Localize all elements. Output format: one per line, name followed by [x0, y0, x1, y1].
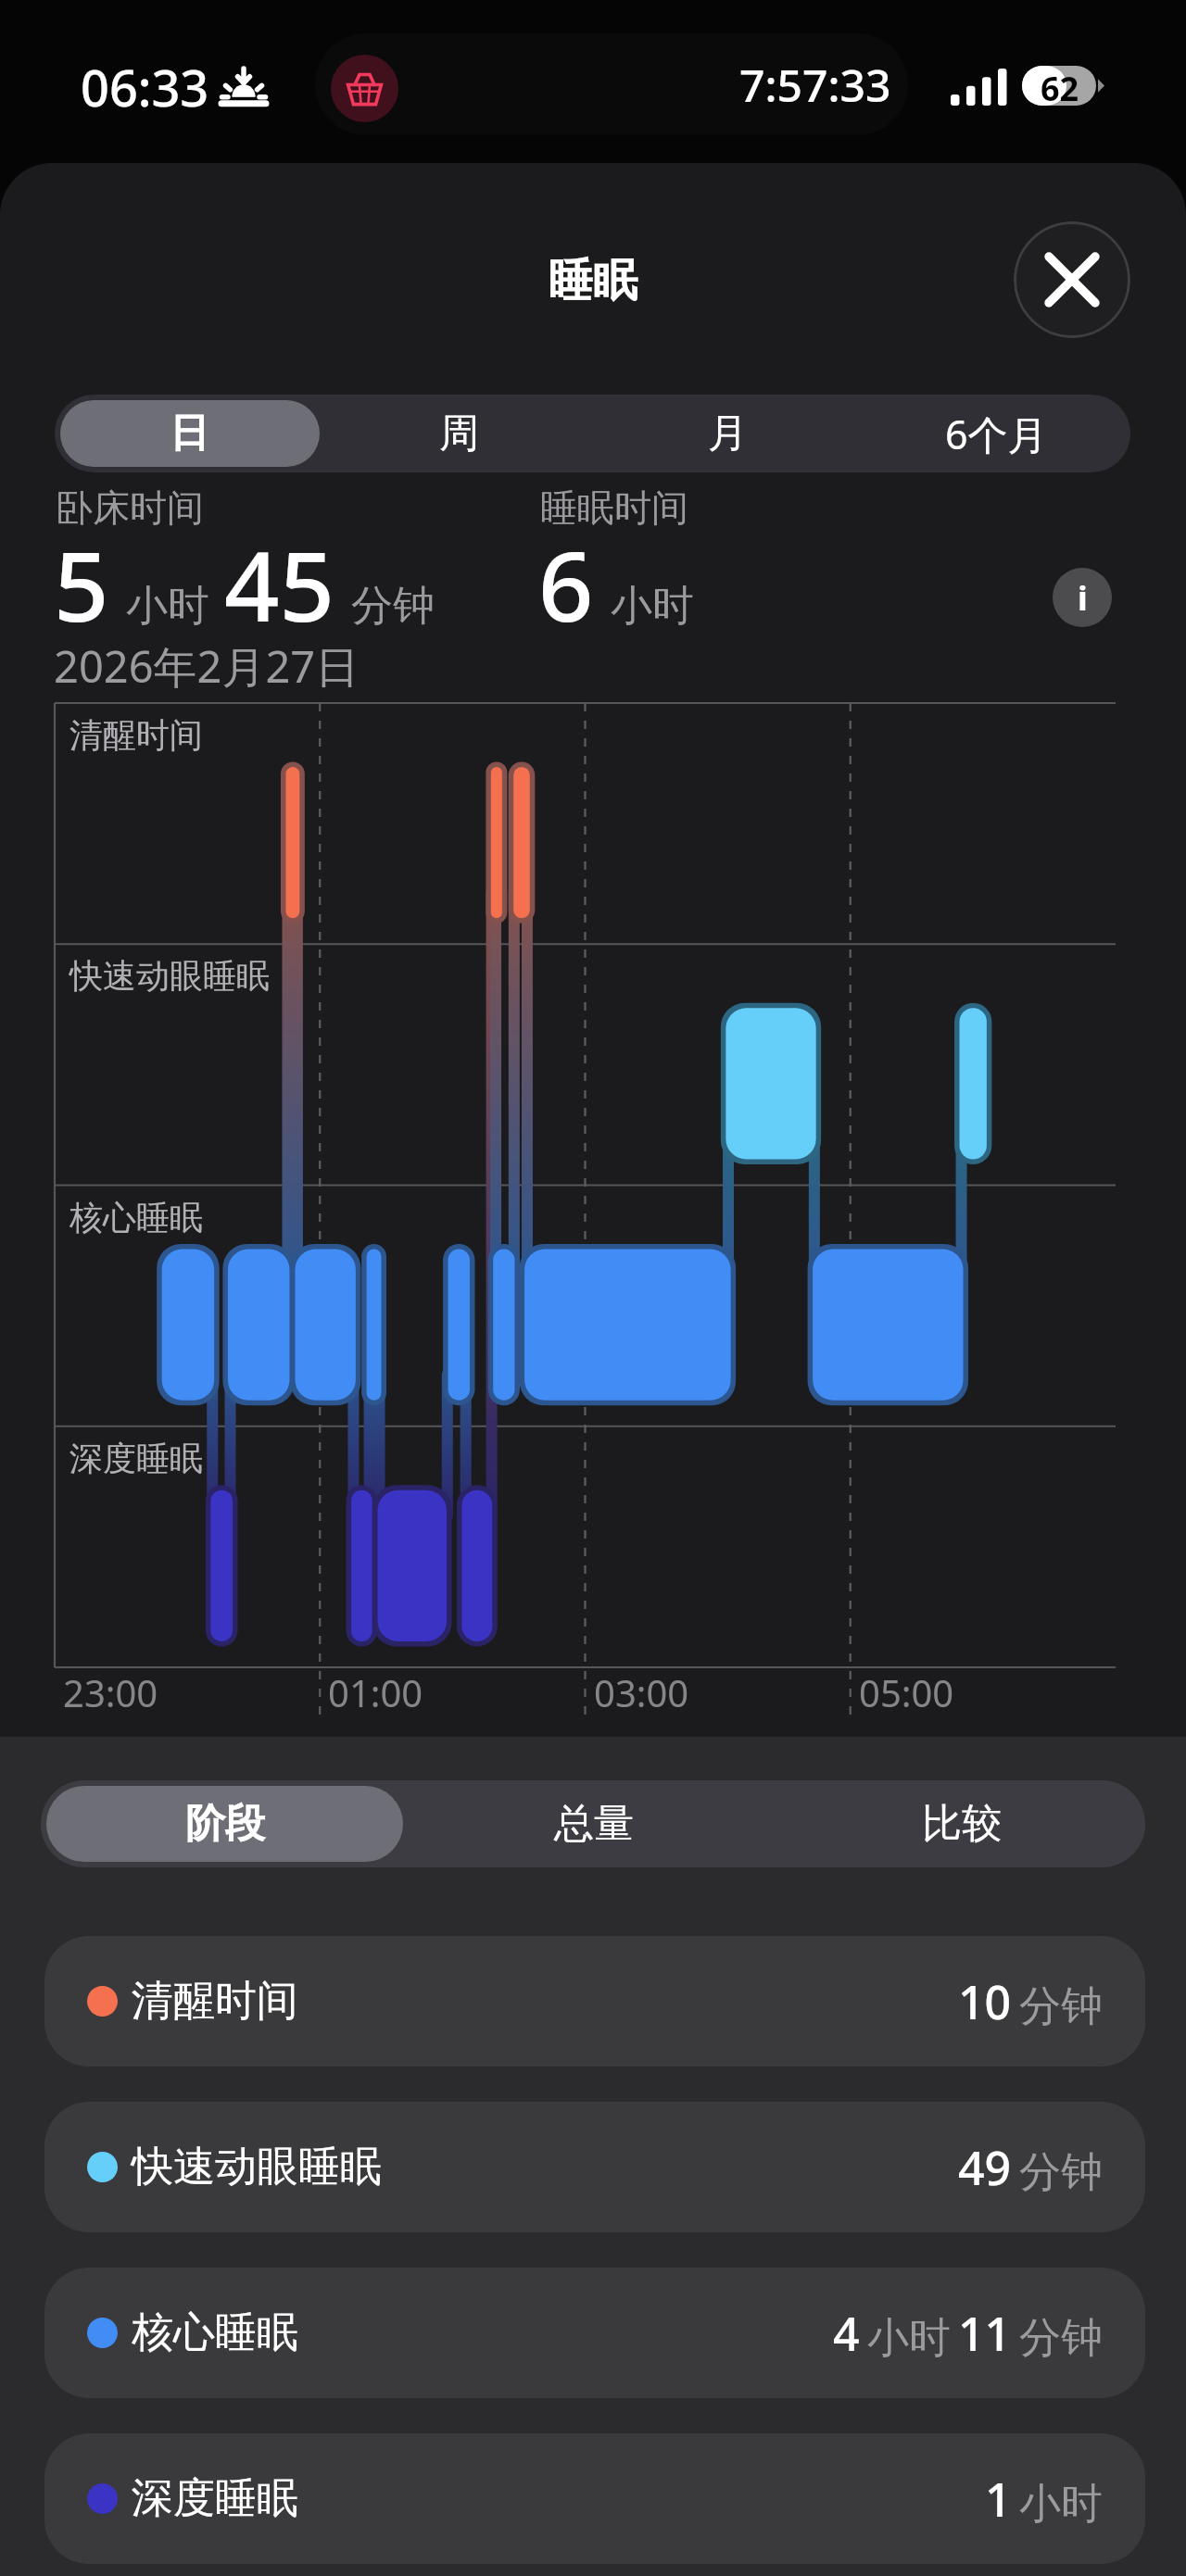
staticText: 11 — [958, 2302, 1012, 2365]
staticText: 分钟 — [1019, 2312, 1103, 2365]
button[interactable]: Close — [1014, 221, 1130, 338]
staticText: 周 — [439, 408, 479, 459]
staticText: 45 — [224, 519, 334, 650]
button[interactable]: 深度睡眠 — [44, 2433, 1145, 2564]
staticText: 深度睡眠 — [132, 2472, 298, 2525]
button[interactable]: 月 — [593, 395, 862, 472]
staticText: 卧床时间 — [56, 484, 204, 531]
staticText: 10 — [958, 1970, 1012, 2033]
staticText: 1 — [985, 2468, 1012, 2531]
staticText: 5 — [54, 519, 109, 650]
staticText: 快速动眼睡眠 — [132, 2141, 382, 2193]
staticText: 7:57:33 — [739, 55, 891, 115]
staticText: 分钟 — [1019, 1980, 1103, 2033]
staticText: 睡眠 — [0, 253, 1186, 308]
staticText: 03:00 — [594, 1667, 689, 1717]
button[interactable]: 阶段 — [41, 1780, 410, 1867]
staticText: 清醒时间 — [69, 714, 203, 756]
button[interactable]: 比较 — [777, 1780, 1145, 1867]
button[interactable]: 快速动眼睡眠 — [44, 2102, 1145, 2232]
button[interactable]: 核心睡眠 — [44, 2268, 1145, 2398]
staticText: i — [1078, 575, 1088, 621]
staticText: 分钟 — [351, 580, 435, 633]
staticText: 06:33 — [81, 53, 209, 121]
staticText: 49 — [958, 2136, 1012, 2199]
staticText: 小时 — [867, 2312, 951, 2365]
staticText: 01:00 — [328, 1667, 423, 1717]
staticText: 4 — [833, 2302, 860, 2365]
staticText: 05:00 — [859, 1667, 954, 1717]
button[interactable]: 日 — [55, 395, 324, 472]
button[interactable]: 清醒时间 — [44, 1936, 1145, 2067]
staticText: 23:00 — [63, 1667, 158, 1717]
staticText: 小时 — [1019, 2478, 1103, 2531]
button[interactable]: Info — [1053, 568, 1112, 627]
staticText: 核心睡眠 — [132, 2306, 298, 2359]
staticText: 6 — [538, 519, 594, 650]
button[interactable]: 总量 — [410, 1780, 777, 1867]
staticText: 分钟 — [1019, 2146, 1103, 2199]
button[interactable]: 周 — [324, 395, 593, 472]
staticText: 深度睡眠 — [69, 1438, 203, 1479]
staticText: 2026年2月27日 — [54, 636, 360, 696]
staticText: 清醒时间 — [132, 1975, 298, 2028]
staticText: 快速动眼睡眠 — [69, 955, 270, 997]
staticText: 总量 — [554, 1799, 634, 1849]
staticText: 比较 — [922, 1799, 1002, 1849]
staticText: 阶段 — [185, 1799, 265, 1849]
staticText: 月 — [708, 408, 748, 459]
staticText: 6个月 — [945, 407, 1048, 461]
button[interactable]: 6个月 — [862, 395, 1130, 472]
staticText: 日 — [170, 408, 209, 459]
staticText: 62 — [1041, 66, 1079, 111]
staticText: 小时 — [126, 580, 209, 633]
staticText: 核心睡眠 — [69, 1197, 203, 1238]
staticText: 小时 — [611, 580, 694, 633]
staticText: 睡眠时间 — [540, 484, 688, 531]
